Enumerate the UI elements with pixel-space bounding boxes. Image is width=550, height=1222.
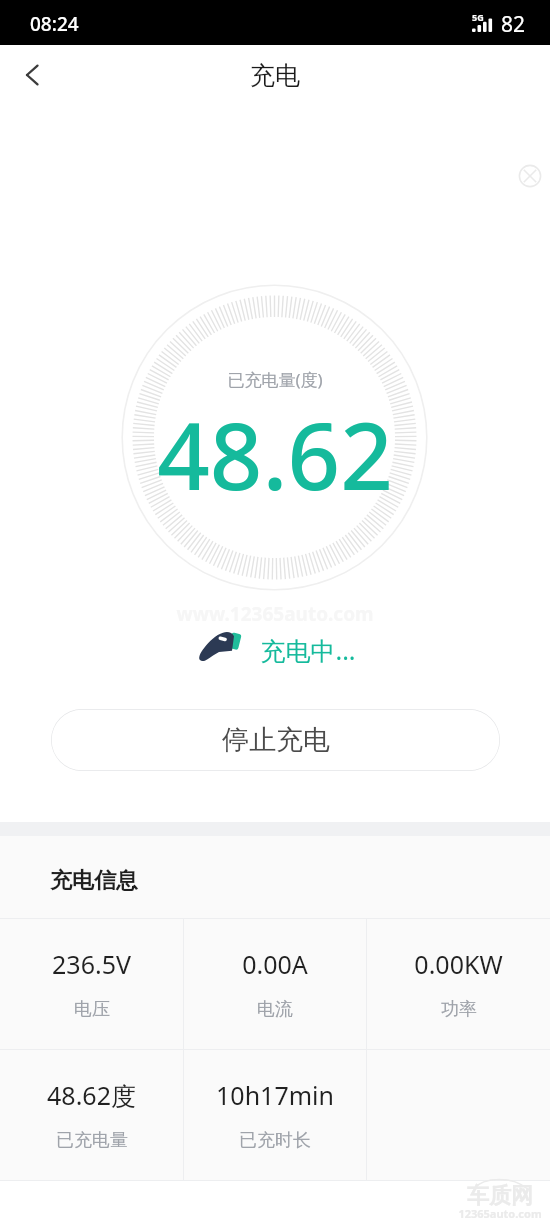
button[interactable]: 停止充电	[51, 709, 500, 771]
staticText: 电流	[257, 998, 293, 1021]
staticText: 10h17min	[216, 1078, 334, 1112]
staticText: 08:24	[30, 11, 79, 37]
button[interactable]: Back	[0, 50, 52, 102]
staticText: 48.62度	[47, 1078, 136, 1112]
staticText: 功率	[441, 998, 477, 1021]
button[interactable]: 48.62度	[0, 1049, 183, 1180]
staticText: 5G	[472, 11, 484, 23]
staticText: 已充时长	[239, 1129, 311, 1152]
staticText: 82	[501, 10, 526, 39]
staticText: 车质网	[467, 1182, 533, 1210]
staticText: 0.00KW	[414, 947, 503, 981]
staticText: 充电	[250, 60, 300, 91]
staticText: 48.62	[0, 392, 550, 517]
button[interactable]: 236.5V	[0, 918, 183, 1049]
staticText: 电压	[74, 998, 110, 1021]
button[interactable]: 10h17min	[184, 1049, 366, 1180]
staticText: 0.00A	[242, 947, 308, 981]
button[interactable]: 0.00A	[184, 918, 366, 1049]
staticText: 12365auto.com	[458, 1206, 542, 1221]
staticText: 236.5V	[52, 947, 131, 981]
staticText: 已充电量(度)	[0, 368, 550, 391]
button[interactable]: Close	[514, 160, 546, 192]
staticText: 已充电量	[56, 1129, 128, 1152]
staticText: 充电中...	[260, 633, 356, 667]
staticText: 充电信息	[50, 867, 138, 895]
button[interactable]: 0.00KW	[367, 918, 550, 1049]
staticText: 停止充电	[222, 723, 330, 757]
